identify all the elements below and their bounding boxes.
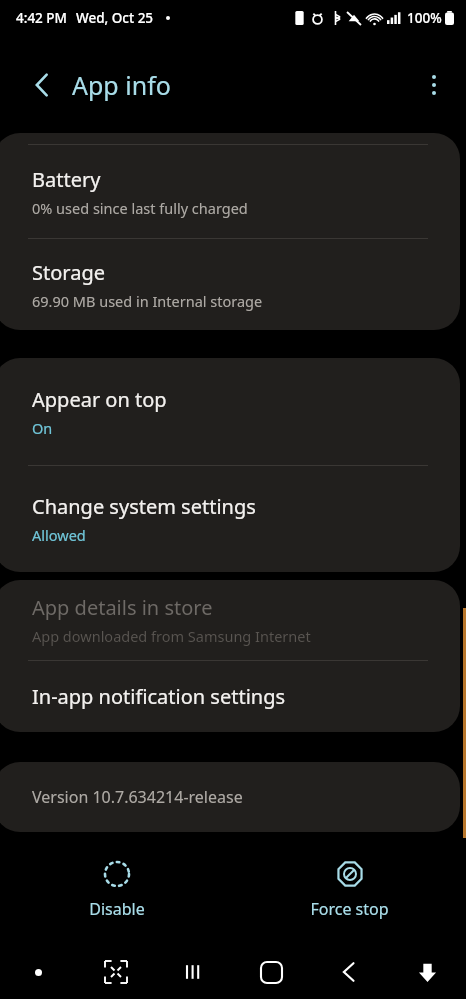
staticText: Wed, Oct 25 — [76, 9, 154, 27]
staticText: App info — [72, 68, 171, 102]
button[interactable]: Screenshot — [77, 945, 154, 999]
staticText: Storage — [32, 259, 105, 286]
staticText: On — [32, 418, 53, 438]
staticText: 0% used since last fully charged — [32, 198, 248, 218]
staticText: In-app notification settings — [32, 683, 286, 710]
staticText: App details in store — [32, 594, 213, 621]
button[interactable]: Hide keyboard — [388, 945, 466, 999]
button[interactable]: Disable — [0, 845, 233, 935]
staticText: Version 10.7.634214-release — [32, 786, 243, 808]
button[interactable]: Storage — [0, 239, 460, 330]
staticText: Disable — [89, 898, 145, 920]
staticText: 4:42 PM — [16, 9, 67, 27]
staticText: App downloaded from Samsung Internet — [32, 626, 311, 646]
staticText: 69.90 MB used in Internal storage — [32, 291, 263, 311]
staticText: Battery — [32, 166, 101, 193]
button[interactable]: Force stop — [233, 845, 466, 935]
staticText: Change system settings — [32, 493, 256, 520]
button[interactable]: Back — [22, 65, 62, 105]
staticText: Allowed — [32, 525, 86, 545]
button[interactable]: Change system settings — [0, 466, 460, 572]
button[interactable]: Home — [232, 945, 310, 999]
staticText: 100% — [407, 9, 442, 27]
button[interactable]: Back — [310, 945, 388, 999]
button[interactable]: Recents — [154, 945, 232, 999]
button[interactable]: In-app notification settings — [0, 661, 460, 732]
staticText: Force stop — [310, 898, 389, 920]
button[interactable]: Appear on top — [0, 358, 460, 465]
button[interactable]: Battery — [0, 145, 460, 238]
button[interactable]: More options — [412, 63, 456, 107]
staticText: Appear on top — [32, 386, 167, 413]
